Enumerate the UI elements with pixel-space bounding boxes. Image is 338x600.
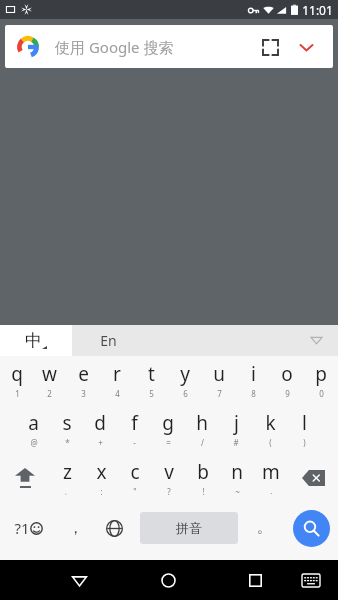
staticText: ． — [267, 486, 275, 496]
staticText: e — [78, 361, 89, 387]
staticText: ? — [167, 486, 171, 497]
staticText: v — [164, 459, 174, 485]
button[interactable]: ?1 — [0, 502, 56, 554]
staticText: 8 — [251, 388, 256, 399]
staticText: ~ — [235, 486, 240, 497]
staticText: 4 — [115, 388, 120, 399]
staticText: 11:01 — [302, 2, 333, 18]
staticText: 5 — [149, 388, 154, 399]
button[interactable]: Collapse — [291, 32, 321, 62]
button[interactable]: a — [17, 404, 50, 453]
staticText: : — [100, 486, 103, 497]
staticText: ( — [269, 437, 272, 448]
staticText: f — [131, 410, 138, 436]
staticText: 。 — [257, 519, 271, 537]
button[interactable]: q — [0, 356, 33, 404]
button[interactable]: l — [287, 404, 321, 453]
staticText: @ — [30, 437, 38, 448]
staticText: w — [42, 361, 57, 387]
button[interactable]: y — [168, 356, 202, 404]
button[interactable]: Home — [146, 560, 190, 600]
staticText: c — [130, 459, 140, 485]
staticText: x — [96, 459, 107, 485]
staticText: l — [302, 410, 307, 436]
button[interactable]: v — [152, 453, 186, 502]
staticText: j — [234, 410, 239, 436]
staticText: 1 — [15, 388, 20, 399]
staticText: q — [11, 361, 23, 387]
button[interactable]: k — [253, 404, 287, 453]
staticText: k — [265, 410, 276, 436]
staticText: r — [113, 361, 121, 387]
staticText: 0 — [319, 388, 324, 399]
button[interactable]: Change keyboard — [94, 502, 134, 554]
staticText: h — [196, 410, 208, 436]
button[interactable]: d — [83, 404, 117, 453]
button[interactable]: 使用 Google 搜索 — [5, 25, 333, 68]
button[interactable]: s — [50, 404, 83, 453]
staticText: En — [100, 331, 117, 350]
staticText: 2 — [47, 388, 52, 399]
button[interactable]: u — [202, 356, 236, 404]
button[interactable]: w — [33, 356, 66, 404]
button[interactable]: n — [220, 453, 254, 502]
button[interactable]: 拼音 — [140, 512, 238, 544]
button[interactable]: h — [185, 404, 219, 453]
staticText: u — [213, 361, 225, 387]
staticText: p — [315, 361, 327, 387]
staticText: t — [148, 361, 155, 387]
staticText: 7 — [217, 388, 222, 399]
staticText: i — [251, 361, 256, 387]
staticText: 拼音 — [176, 520, 202, 536]
staticText: m — [262, 459, 280, 485]
button[interactable]: x — [84, 453, 118, 502]
button[interactable]: Recent apps — [233, 560, 277, 600]
button[interactable]: 中 — [0, 325, 72, 356]
staticText: 6 — [183, 388, 188, 399]
staticText: d — [94, 410, 106, 436]
staticText: s — [62, 410, 72, 436]
staticText: n — [231, 459, 243, 485]
staticText: ?1 — [14, 518, 30, 538]
button[interactable]: j — [219, 404, 253, 453]
button[interactable]: Switch keyboard — [289, 560, 333, 600]
button[interactable]: ， — [56, 502, 94, 554]
button[interactable]: i — [236, 356, 270, 404]
staticText: + — [98, 437, 103, 448]
staticText: ! — [202, 486, 205, 497]
button[interactable]: c — [118, 453, 152, 502]
button[interactable]: m — [254, 453, 288, 502]
staticText: 使用 Google 搜索 — [55, 37, 174, 57]
button[interactable]: r — [100, 356, 134, 404]
button[interactable]: Backspace — [288, 453, 338, 502]
button[interactable]: z — [50, 453, 84, 502]
staticText: ) — [303, 437, 306, 448]
staticText: 、 — [64, 486, 72, 496]
staticText: g — [162, 410, 174, 436]
staticText: # — [233, 437, 239, 448]
button[interactable]: Back — [57, 560, 101, 600]
staticText: = — [166, 437, 171, 448]
button[interactable]: o — [270, 356, 304, 404]
button[interactable]: g — [151, 404, 185, 453]
button[interactable]: 。 — [244, 502, 284, 554]
staticText: 9 — [285, 388, 290, 399]
button[interactable]: t — [134, 356, 168, 404]
button[interactable]: b — [186, 453, 220, 502]
staticText: * — [65, 437, 70, 448]
button[interactable]: Shift — [0, 453, 50, 502]
staticText: " — [133, 486, 137, 497]
button[interactable]: p — [304, 356, 338, 404]
staticText: b — [197, 459, 209, 485]
button[interactable]: En — [72, 325, 338, 356]
button[interactable]: Search — [284, 502, 338, 554]
staticText: a — [28, 410, 39, 436]
button[interactable]: Lens — [255, 32, 285, 62]
staticText: z — [63, 459, 72, 485]
staticText: - — [133, 437, 136, 448]
button[interactable]: e — [66, 356, 100, 404]
staticText: 3 — [81, 388, 86, 399]
staticText: o — [281, 361, 293, 387]
staticText: 中 — [25, 330, 42, 351]
button[interactable]: f — [117, 404, 151, 453]
